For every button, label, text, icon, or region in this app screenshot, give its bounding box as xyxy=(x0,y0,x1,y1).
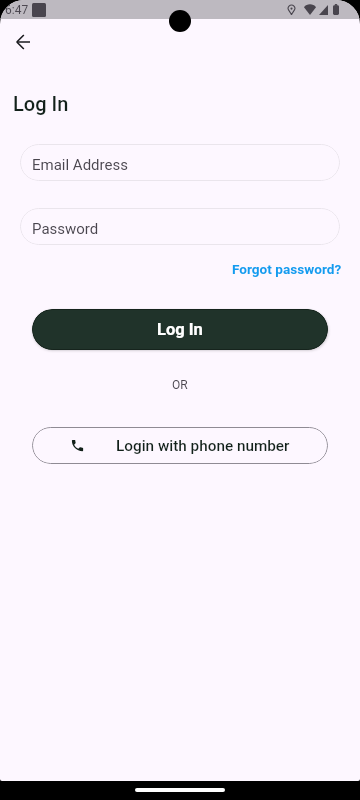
button[interactable]: Password xyxy=(20,208,340,245)
button[interactable]: Log In xyxy=(32,309,328,350)
button[interactable]: Login with phone number xyxy=(32,427,328,464)
staticText: OR xyxy=(172,378,188,392)
staticText: Password xyxy=(32,220,99,238)
staticText: Log In xyxy=(157,320,203,339)
staticText: Log In xyxy=(13,92,69,115)
staticText: Login with phone number xyxy=(116,437,290,455)
staticText: Email Address xyxy=(32,156,128,174)
button[interactable]: Forgot password? xyxy=(232,261,360,277)
button[interactable]: Back xyxy=(7,26,38,57)
staticText: 6:47 xyxy=(5,3,29,17)
button[interactable]: Email Address xyxy=(20,144,340,181)
